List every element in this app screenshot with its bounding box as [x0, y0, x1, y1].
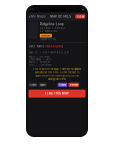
staticText: OFFLINE: [41, 34, 50, 37]
button[interactable]: ‹: [29, 14, 46, 19]
staticText: Downloaded • Jun 3: [29, 58, 51, 61]
staticText: update you with an incoming return so th…: [35, 74, 79, 77]
staticText: available at this time. Allow the user t…: [35, 71, 79, 74]
staticText: FLAG THIS MAP: [45, 92, 69, 95]
staticText: Source • Terrain v4: [29, 61, 50, 63]
button[interactable]: Remove: [68, 83, 79, 87]
button[interactable]: Close: [75, 14, 85, 19]
staticText: Export: [40, 83, 46, 86]
staticText: Sync status: [29, 45, 44, 48]
staticText: MAP DETAILS: [50, 15, 71, 18]
button[interactable]: Resync: [58, 83, 67, 87]
staticText: Remove: [70, 83, 78, 86]
button[interactable]: Share: [29, 83, 37, 87]
staticText: UNAVAILABLE: [45, 45, 64, 48]
staticText: 9:41: [29, 8, 33, 11]
staticText: Region • Northeast: [29, 55, 50, 58]
button[interactable]: FLAG THIS MAP: [28, 90, 85, 98]
staticText: Updated 3 days ago: [40, 26, 66, 29]
staticText: Resync: [59, 83, 66, 86]
staticText: 32 waypoints: [40, 29, 57, 33]
staticText: Ridgeline Loop: [40, 22, 64, 26]
staticText: This is an Offline Map. There are no upd…: [33, 68, 81, 70]
staticText: My Maps: [31, 15, 46, 18]
staticText: Share: [30, 83, 36, 86]
staticText: Close: [77, 15, 84, 18]
staticText: Tiles • 1,284 cached: [29, 63, 51, 66]
button[interactable]: Export: [38, 83, 47, 87]
staticText: caching can finish.: [47, 78, 66, 80]
staticText: ‹: [29, 14, 31, 19]
staticText: Map ID • 4f30-a8cf-9912-ba7: [29, 51, 69, 54]
staticText: Cached 14.2 MB: [40, 38, 57, 41]
